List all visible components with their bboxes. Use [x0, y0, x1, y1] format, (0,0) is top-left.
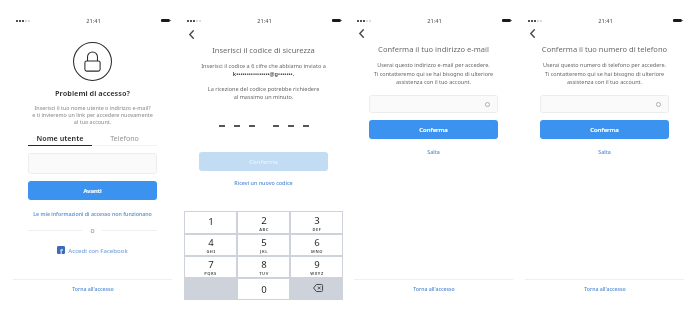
staticText: O	[90, 227, 95, 234]
button[interactable]: Salta	[354, 148, 513, 155]
staticText: Conferma il tuo numero di telefono	[525, 44, 684, 54]
staticText: 3	[314, 214, 320, 227]
staticText: GHI	[206, 249, 216, 254]
button[interactable]: 5	[238, 235, 289, 255]
staticText: MNO	[311, 249, 323, 254]
button[interactable]: Backspace	[290, 278, 343, 300]
button[interactable]	[28, 153, 157, 174]
staticText: 0	[261, 283, 267, 296]
staticText: 21:41	[257, 17, 272, 25]
button[interactable]	[369, 95, 498, 113]
staticText: PQRS	[204, 271, 217, 276]
staticText: 21:41	[598, 17, 613, 25]
staticText: Inserisci il codice di sicurezza	[184, 45, 343, 55]
staticText: k••••••••••••••••@g•••••••.	[184, 70, 343, 78]
staticText: DEF	[312, 227, 322, 232]
staticText: Inserisci il tuo nome utente o indirizzo…	[21, 104, 164, 125]
staticText: La ricezione del codice potrebbe richied…	[184, 85, 343, 101]
button[interactable]: 8	[238, 257, 289, 277]
staticText: Conferma	[249, 158, 278, 166]
button[interactable]: 2	[238, 212, 289, 233]
staticText: Inserisci il codice a 6 cifre che abbiam…	[184, 62, 343, 70]
button[interactable]: Le mie informazioni di accesso non funzi…	[13, 210, 172, 217]
staticText: Conferma	[419, 126, 448, 134]
button[interactable]: Telefono	[92, 133, 157, 143]
button[interactable]: Conferma	[199, 152, 328, 171]
button[interactable]: Back	[353, 25, 369, 41]
button[interactable]: 3	[291, 212, 342, 233]
button[interactable]: Nome utente	[28, 133, 92, 143]
staticText: Torna all'accesso	[584, 285, 626, 292]
staticText: JKL	[260, 249, 268, 254]
button[interactable]: Avanti	[28, 181, 157, 200]
staticText: Conferma	[590, 126, 619, 134]
button[interactable]: Conferma	[369, 120, 498, 139]
staticText: 21:41	[427, 17, 442, 25]
staticText: 9	[314, 258, 320, 271]
staticText: Conferma il tuo indirizzo e-mail	[354, 44, 513, 54]
staticText: 21:41	[86, 17, 101, 25]
staticText: ABC	[259, 227, 269, 232]
staticText: Userai questo numero di telefono per acc…	[530, 61, 679, 85]
staticText: 1	[208, 215, 214, 228]
button[interactable]: f	[13, 244, 172, 255]
button[interactable]: 6	[291, 235, 342, 255]
staticText: Nome utente	[28, 133, 92, 143]
button[interactable]: Back	[183, 26, 199, 42]
button[interactable]: Conferma	[540, 120, 669, 139]
button[interactable]: 0	[238, 279, 289, 299]
staticText: Avanti	[83, 187, 102, 195]
staticText: WXYZ	[310, 271, 324, 276]
button[interactable]	[540, 95, 669, 113]
staticText: Telefono	[92, 133, 157, 143]
staticText: 5	[261, 236, 267, 249]
button[interactable]: 9	[291, 257, 342, 277]
staticText: 6	[314, 236, 320, 249]
button[interactable]: Ricevi un nuovo codice	[184, 179, 343, 186]
staticText: 8	[261, 258, 267, 271]
staticText: 4	[208, 236, 214, 249]
button[interactable]: 4	[185, 235, 236, 255]
staticText: 2	[261, 214, 267, 227]
button[interactable]: Back	[524, 25, 540, 41]
staticText: Userai questo indirizzo e-mail per acced…	[359, 61, 508, 85]
staticText: 7	[208, 258, 214, 271]
staticText: Torna all'accesso	[413, 285, 455, 292]
button[interactable]: Salta	[525, 148, 684, 155]
button[interactable]: Torna all'accesso	[354, 280, 513, 297]
button[interactable]: Torna all'accesso	[525, 280, 684, 297]
staticText: TUV	[259, 271, 269, 276]
staticText: Accedi con Facebook	[68, 246, 128, 254]
staticText: f	[60, 246, 63, 254]
staticText: Problemi di accesso?	[13, 88, 172, 98]
button[interactable]: 1	[185, 212, 236, 233]
button[interactable]: Torna all'accesso	[13, 280, 172, 297]
staticText: Torna all'accesso	[72, 285, 114, 292]
button[interactable]: 7	[185, 257, 236, 277]
